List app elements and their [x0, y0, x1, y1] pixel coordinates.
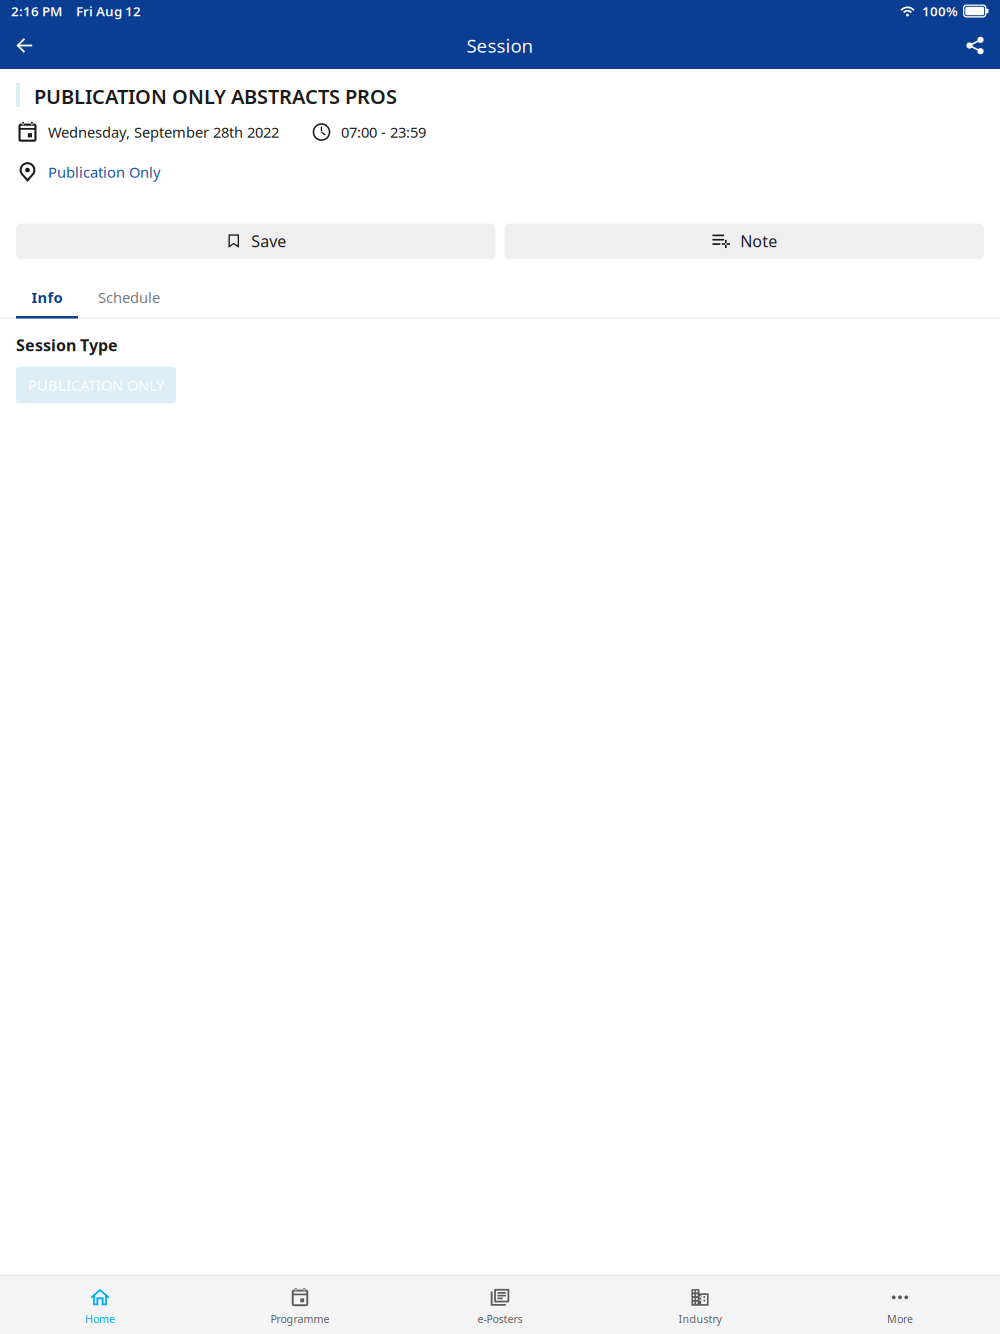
button[interactable]: Schedule [78, 278, 174, 319]
staticText: Wednesday, September 28th 2022 [48, 122, 279, 142]
staticText: e-Posters [477, 1312, 522, 1326]
staticText: Note [740, 230, 777, 252]
staticText: 2:16 PM [11, 2, 62, 20]
staticText: More [887, 1312, 913, 1326]
staticText: Session [466, 33, 533, 58]
button[interactable]: Note [504, 224, 984, 259]
staticText: Info [31, 288, 62, 307]
staticText: Session Type [16, 334, 118, 356]
staticText: Schedule [98, 288, 160, 307]
staticText: Industry [678, 1312, 721, 1326]
button[interactable]: Back [0, 22, 49, 69]
staticText: Programme [270, 1312, 329, 1326]
staticText: PUBLICATION ONLY ABSTRACTS PROS [34, 83, 397, 110]
staticText: Save [251, 230, 286, 252]
button[interactable]: Info [16, 278, 78, 319]
staticText: PUBLICATION ONLY [28, 375, 164, 395]
staticText: Home [85, 1312, 115, 1326]
staticText: Publication Only [48, 162, 160, 182]
button[interactable]: Save [16, 224, 495, 259]
staticText: Fri Aug 12 [76, 2, 141, 20]
button[interactable]: e-Posters [400, 1276, 600, 1334]
button[interactable]: Programme [200, 1276, 400, 1334]
staticText: 100% [922, 2, 958, 20]
button[interactable]: More [800, 1276, 1000, 1334]
button[interactable]: Publication Only [0, 144, 1000, 184]
button[interactable]: Share [950, 21, 1000, 69]
button[interactable]: Industry [600, 1276, 800, 1334]
staticText: 07:00 - 23:59 [341, 122, 426, 142]
button[interactable]: Home [0, 1276, 200, 1334]
